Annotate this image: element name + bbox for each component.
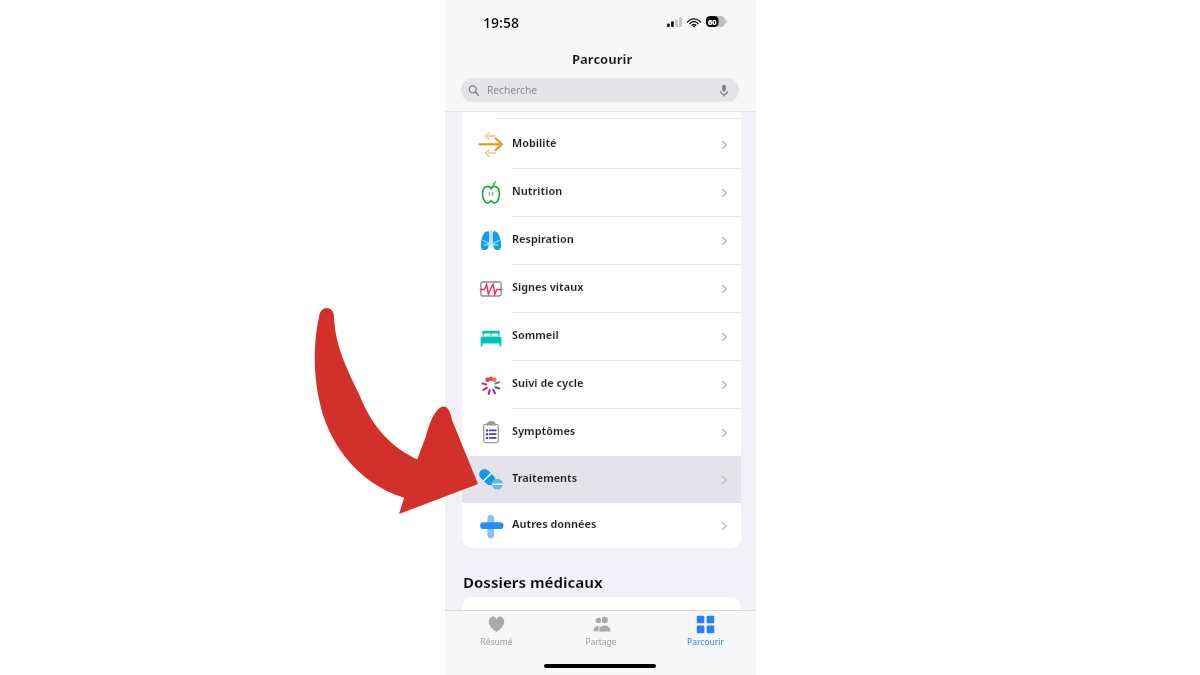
button[interactable]: Traitements [462,456,741,503]
button[interactable]: Dictée vocale [715,79,733,101]
button[interactable]: Signes vitaux [462,265,741,312]
button[interactable]: Autres données [462,503,741,548]
staticText: Parcourir [572,50,633,68]
staticText: Autres données [512,516,597,531]
staticText: Partage [585,636,617,648]
staticText: Respiration [512,231,574,246]
button[interactable]: Sommeil [462,313,741,360]
staticText: Sommeil [512,327,559,342]
button[interactable]: Suivi de cycle [462,361,741,408]
button[interactable]: Résumé [461,615,531,648]
staticText: Traitements [512,470,578,485]
staticText: 60 [708,17,717,27]
button[interactable]: Respiration [462,217,741,264]
staticText: Symptômes [512,423,576,438]
staticText: Nutrition [512,183,563,198]
staticText: Parcourir [687,636,724,648]
button[interactable]: Symptômes [462,409,741,456]
button[interactable]: Mobilité [462,121,741,168]
staticText: Suivi de cycle [512,375,584,390]
staticText: Recherche [487,83,537,97]
button[interactable]: Recherche [461,78,739,102]
staticText: Signes vitaux [512,279,584,294]
staticText: Mobilité [512,135,557,150]
button[interactable]: Nutrition [462,169,741,216]
button[interactable]: Partage [566,615,636,648]
staticText: Résumé [480,636,513,648]
staticText: Dossiers médicaux [463,572,603,592]
button[interactable]: Parcourir [670,615,740,648]
staticText: 19:58 [483,13,519,32]
